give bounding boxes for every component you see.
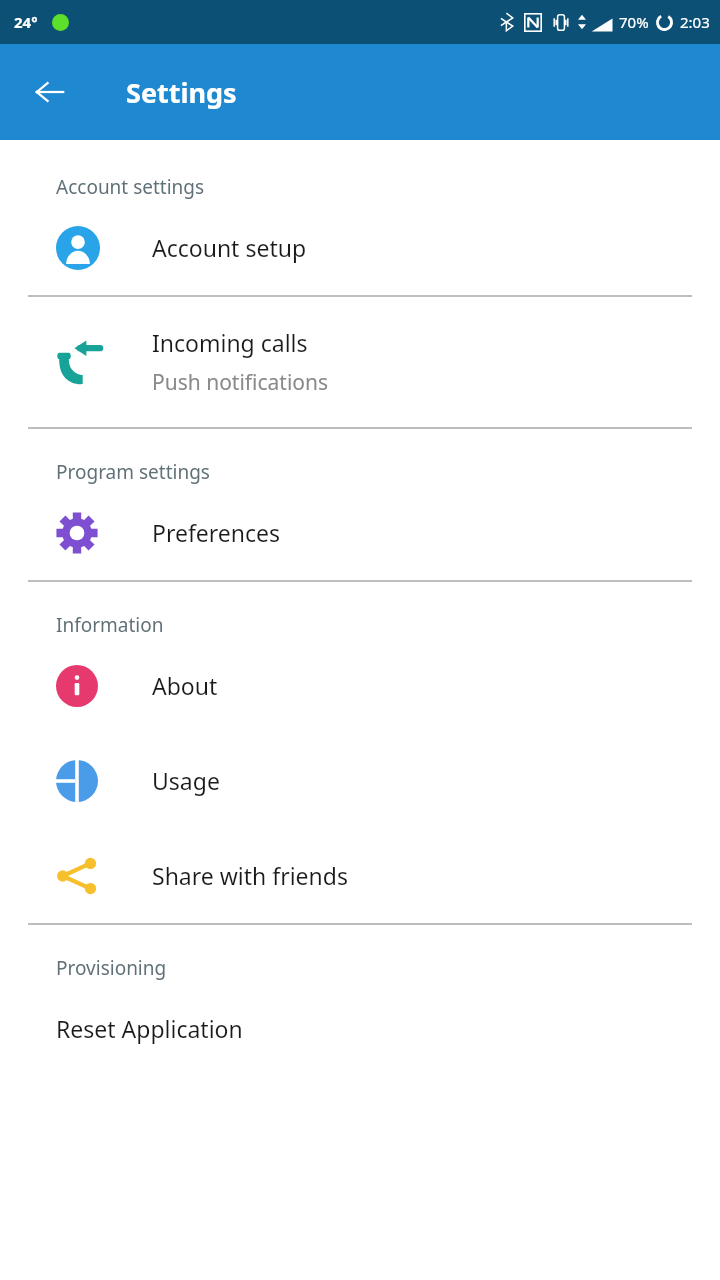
button[interactable]: Share with friends: [0, 828, 720, 923]
button[interactable]: Preferences: [0, 485, 720, 580]
staticText: Preferences: [152, 517, 281, 548]
staticText: Incoming calls: [152, 327, 308, 358]
button[interactable]: Reset Application: [0, 981, 720, 1076]
staticText: Provisioning: [56, 955, 167, 981]
staticText: Settings: [126, 74, 237, 111]
button[interactable]: About: [0, 638, 720, 733]
staticText: About: [152, 670, 218, 701]
button[interactable]: Incoming calls: [0, 297, 720, 427]
staticText: Push notifications: [152, 368, 329, 397]
button[interactable]: Account setup: [0, 200, 720, 295]
staticText: Reset Application: [56, 1013, 243, 1044]
staticText: Account settings: [56, 174, 205, 200]
staticText: 24°: [14, 12, 38, 32]
staticText: Information: [56, 612, 164, 638]
button[interactable]: Usage: [0, 733, 720, 828]
staticText: Program settings: [56, 459, 210, 485]
staticText: 2:03: [680, 12, 710, 32]
staticText: Account setup: [152, 232, 307, 263]
staticText: Share with friends: [152, 860, 348, 891]
staticText: Usage: [152, 765, 220, 796]
staticText: 70%: [619, 12, 649, 32]
button[interactable]: Back: [22, 64, 78, 120]
